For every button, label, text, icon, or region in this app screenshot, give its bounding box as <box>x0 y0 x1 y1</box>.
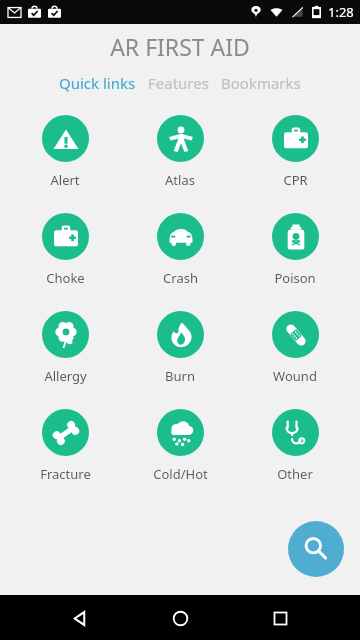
staticText: Burn <box>165 367 195 385</box>
button[interactable]: Burn <box>130 311 230 385</box>
button[interactable]: Back <box>60 598 100 638</box>
staticText: CPR <box>283 171 308 189</box>
staticText: Alert <box>50 171 80 189</box>
button[interactable]: Crash <box>130 213 230 287</box>
button[interactable]: Wound <box>245 311 345 385</box>
staticText: Atlas <box>165 171 195 189</box>
staticText: Bookmarks <box>221 73 301 93</box>
button[interactable]: Poison <box>245 213 345 287</box>
staticText: 1:28 <box>328 3 354 21</box>
staticText: Fracture <box>40 465 91 483</box>
button[interactable]: Home <box>160 598 200 638</box>
button[interactable]: Features <box>142 71 215 95</box>
button[interactable]: CPR <box>245 115 345 189</box>
button[interactable]: Other <box>245 409 345 483</box>
staticText: Choke <box>46 269 85 287</box>
staticText: Crash <box>163 269 198 287</box>
button[interactable]: Fracture <box>15 409 115 483</box>
button[interactable]: Search <box>288 521 344 577</box>
staticText: Wound <box>273 367 317 385</box>
staticText: AR FIRST AID <box>0 31 360 62</box>
button[interactable]: Recents <box>260 598 300 638</box>
button[interactable]: Allergy <box>15 311 115 385</box>
staticText: Quick links <box>59 73 136 93</box>
button[interactable]: Alert <box>15 115 115 189</box>
staticText: Poison <box>274 269 316 287</box>
staticText: Features <box>148 73 209 93</box>
staticText: Other <box>277 465 313 483</box>
staticText: Allergy <box>44 367 87 385</box>
button[interactable]: Atlas <box>130 115 230 189</box>
button[interactable]: Cold/Hot <box>130 409 230 483</box>
button[interactable]: Choke <box>15 213 115 287</box>
button[interactable]: Quick links <box>53 71 142 95</box>
staticText: Cold/Hot <box>153 465 208 483</box>
button[interactable]: Bookmarks <box>215 71 307 95</box>
